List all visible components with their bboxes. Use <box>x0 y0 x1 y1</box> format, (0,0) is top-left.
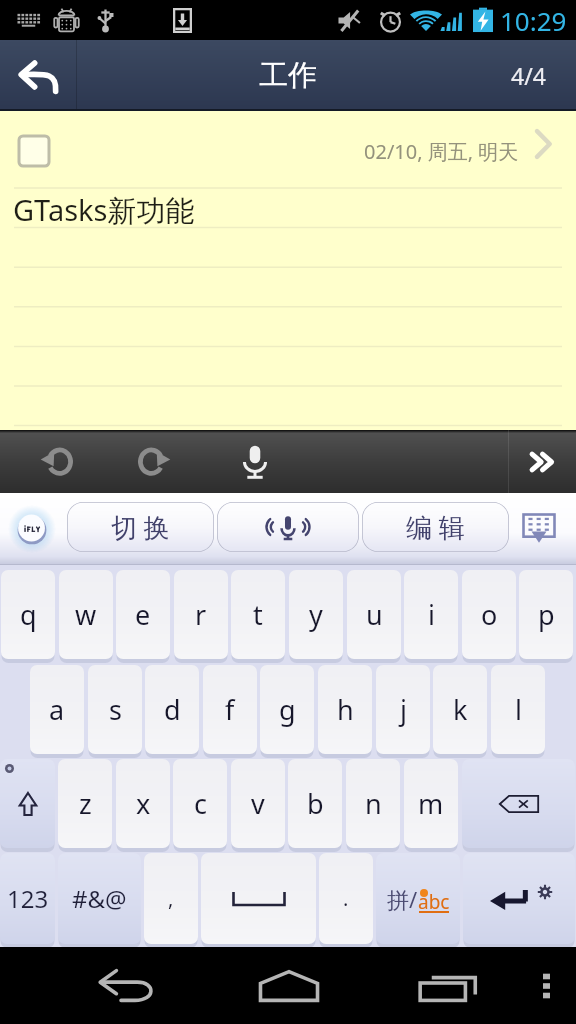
staticText: , <box>168 885 174 912</box>
staticText: 10:29 <box>500 3 567 38</box>
button[interactable]: 123 <box>0 853 55 947</box>
staticText: 切 换 <box>111 509 170 545</box>
staticText: f <box>225 691 235 728</box>
button[interactable]: e <box>116 570 170 662</box>
staticText: 拼/ <box>387 884 418 914</box>
staticText: . <box>343 885 349 912</box>
button[interactable]: Backspace <box>462 759 575 851</box>
button[interactable]: 切 换 <box>67 502 214 552</box>
staticText: #&@ <box>72 882 127 915</box>
button[interactable]: 编 辑 <box>362 502 509 552</box>
button[interactable]: Space <box>201 853 316 947</box>
button[interactable]: r <box>174 570 228 662</box>
button[interactable]: i <box>404 570 458 662</box>
staticText: e <box>135 596 151 633</box>
staticText: v <box>251 785 265 822</box>
button[interactable]: More tools <box>509 430 576 493</box>
button[interactable]: g <box>260 665 314 757</box>
button[interactable]: Open due date <box>518 119 568 169</box>
staticText: 02/10, 周五, 明天 <box>364 138 519 165</box>
button[interactable]: 02/10, 周五, 明天 <box>358 132 525 171</box>
button[interactable]: b <box>288 759 342 851</box>
button[interactable]: v <box>231 759 285 851</box>
staticText: y <box>309 596 323 633</box>
button[interactable]: Voice input <box>206 430 304 493</box>
button[interactable]: Recent apps <box>378 947 518 1024</box>
button[interactable]: w <box>59 570 113 662</box>
staticText: u <box>366 596 383 633</box>
button[interactable]: t <box>231 570 285 662</box>
staticText: r <box>195 596 207 633</box>
button[interactable]: Home <box>219 947 359 1024</box>
staticText: m <box>418 785 444 822</box>
button[interactable]: d <box>145 665 199 757</box>
button[interactable]: p <box>519 570 573 662</box>
button[interactable]: f <box>203 665 257 757</box>
staticText: o <box>481 596 498 633</box>
button[interactable]: h <box>318 665 372 757</box>
button[interactable]: Undo <box>10 430 104 493</box>
staticText: 123 <box>7 882 49 915</box>
staticText: x <box>136 785 151 822</box>
button[interactable]: Redo <box>106 430 202 493</box>
button[interactable]: Enter <box>463 853 575 947</box>
staticText: h <box>337 691 354 728</box>
button[interactable]: Hide keyboard <box>516 505 562 551</box>
button[interactable]: Voice input <box>217 502 359 552</box>
button[interactable]: Mark task complete <box>6 123 62 179</box>
staticText: a <box>49 691 65 728</box>
staticText: i <box>428 596 435 633</box>
staticText: w <box>75 596 97 633</box>
button[interactable]: Switch pinyin and English <box>376 853 460 947</box>
staticText: b <box>307 785 324 822</box>
button[interactable]: More options <box>516 947 576 1024</box>
staticText: 工作 <box>259 57 317 94</box>
button[interactable]: o <box>462 570 516 662</box>
button[interactable]: k <box>433 665 487 757</box>
button[interactable]: 4/4 <box>480 40 576 111</box>
staticText: j <box>400 691 407 728</box>
staticText: n <box>365 785 382 822</box>
button[interactable]: , <box>144 853 198 947</box>
staticText: t <box>253 596 263 633</box>
button[interactable]: u <box>347 570 401 662</box>
button[interactable]: Back <box>58 947 198 1024</box>
staticText: c <box>194 785 207 822</box>
staticText: g <box>279 691 296 728</box>
staticText: 4/4 <box>511 60 546 91</box>
button[interactable]: j <box>376 665 430 757</box>
staticText: 编 辑 <box>406 509 465 545</box>
button[interactable]: s <box>88 665 142 757</box>
button[interactable]: Input method options <box>8 505 56 553</box>
staticText: z <box>79 785 92 822</box>
button[interactable]: q <box>1 570 55 662</box>
staticText: k <box>453 691 468 728</box>
button[interactable]: x <box>116 759 170 851</box>
button[interactable]: Shift <box>0 759 55 851</box>
button[interactable]: #&@ <box>58 853 141 947</box>
button[interactable]: l <box>491 665 545 757</box>
button[interactable]: . <box>319 853 373 947</box>
staticText: l <box>515 691 522 728</box>
button[interactable]: a <box>30 665 84 757</box>
staticText: s <box>109 691 122 728</box>
staticText: d <box>164 691 181 728</box>
button[interactable]: Back <box>0 40 76 111</box>
button[interactable]: c <box>173 759 227 851</box>
button[interactable]: m <box>404 759 458 851</box>
staticText: q <box>20 596 37 633</box>
staticText: abc <box>418 889 450 915</box>
staticText: p <box>538 596 555 633</box>
staticText: GTasks新功能 <box>13 190 195 230</box>
button[interactable]: y <box>289 570 343 662</box>
button[interactable]: n <box>346 759 400 851</box>
button[interactable]: z <box>58 759 112 851</box>
